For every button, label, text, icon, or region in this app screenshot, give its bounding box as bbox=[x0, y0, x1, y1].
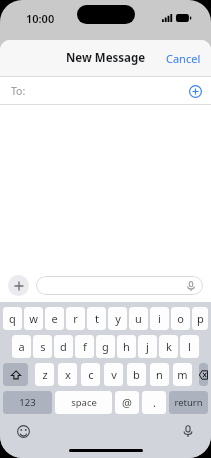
button[interactable] bbox=[36, 276, 203, 295]
button[interactable]: m bbox=[173, 363, 192, 386]
staticText: b bbox=[133, 367, 140, 382]
staticText: . bbox=[153, 395, 156, 410]
staticText: d bbox=[60, 339, 67, 354]
staticText: f bbox=[83, 339, 87, 354]
button[interactable]: o bbox=[171, 307, 190, 330]
staticText: p bbox=[197, 311, 204, 326]
button[interactable]: a bbox=[12, 335, 31, 358]
button[interactable]: e bbox=[45, 307, 64, 330]
staticText: x bbox=[65, 367, 71, 382]
staticText: n bbox=[156, 367, 163, 382]
button[interactable]: s bbox=[33, 335, 52, 358]
button[interactable]: y bbox=[108, 307, 127, 330]
button[interactable]: Shift bbox=[3, 363, 28, 386]
staticText: a bbox=[18, 339, 25, 354]
button[interactable]: @ bbox=[115, 391, 139, 414]
staticText: w bbox=[29, 311, 38, 326]
staticText: c bbox=[88, 367, 94, 382]
staticText: e bbox=[51, 311, 58, 326]
staticText: 123 bbox=[19, 396, 36, 409]
button[interactable]: v bbox=[104, 363, 123, 386]
staticText: @ bbox=[122, 395, 132, 410]
button[interactable]: b bbox=[127, 363, 146, 386]
button[interactable]: return bbox=[169, 391, 208, 414]
button[interactable]: w bbox=[24, 307, 43, 330]
button[interactable]: Cancel bbox=[156, 43, 211, 74]
button[interactable]: j bbox=[138, 335, 157, 358]
staticText: q bbox=[9, 311, 16, 326]
staticText: u bbox=[135, 311, 142, 326]
staticText: t bbox=[95, 311, 99, 326]
staticText: h bbox=[123, 339, 130, 354]
staticText: v bbox=[111, 367, 117, 382]
staticText: k bbox=[166, 339, 172, 354]
button[interactable]: k bbox=[159, 335, 178, 358]
staticText: i bbox=[158, 311, 161, 326]
button[interactable]: h bbox=[117, 335, 136, 358]
button[interactable]: Dictation bbox=[179, 422, 197, 440]
button[interactable]: i bbox=[150, 307, 169, 330]
staticText: l bbox=[188, 339, 191, 354]
button[interactable]: n bbox=[150, 363, 169, 386]
button[interactable]: z bbox=[35, 363, 54, 386]
staticText: m bbox=[177, 367, 188, 382]
staticText: 10:00 bbox=[26, 11, 55, 26]
button[interactable]: . bbox=[142, 391, 166, 414]
button[interactable]: x bbox=[58, 363, 77, 386]
button[interactable]: q bbox=[3, 307, 22, 330]
button[interactable]: g bbox=[96, 335, 115, 358]
button[interactable]: space bbox=[55, 391, 112, 414]
staticText: y bbox=[115, 311, 121, 326]
button[interactable]: c bbox=[81, 363, 100, 386]
staticText: z bbox=[42, 367, 48, 382]
button[interactable]: l bbox=[180, 335, 199, 358]
button[interactable]: p bbox=[192, 307, 208, 330]
button[interactable]: r bbox=[66, 307, 85, 330]
staticText: Cancel bbox=[166, 51, 201, 66]
button[interactable]: Emoji bbox=[14, 422, 32, 440]
button[interactable]: t bbox=[87, 307, 106, 330]
button[interactable]: u bbox=[129, 307, 148, 330]
staticText: s bbox=[40, 339, 46, 354]
staticText: g bbox=[102, 339, 109, 354]
staticText: o bbox=[177, 311, 184, 326]
button[interactable]: d bbox=[54, 335, 73, 358]
button[interactable]: To: bbox=[0, 77, 211, 104]
staticText: To: bbox=[11, 84, 26, 98]
button[interactable]: f bbox=[75, 335, 94, 358]
staticText: r bbox=[73, 311, 78, 326]
staticText: New Message bbox=[66, 50, 146, 66]
button[interactable]: 123 bbox=[3, 391, 52, 414]
staticText: space bbox=[71, 396, 97, 409]
button[interactable]: Add attachment bbox=[8, 275, 29, 296]
button[interactable]: Add contact bbox=[187, 83, 203, 99]
staticText: return bbox=[174, 396, 203, 409]
staticText: j bbox=[146, 339, 149, 354]
button[interactable]: Delete bbox=[199, 363, 208, 386]
